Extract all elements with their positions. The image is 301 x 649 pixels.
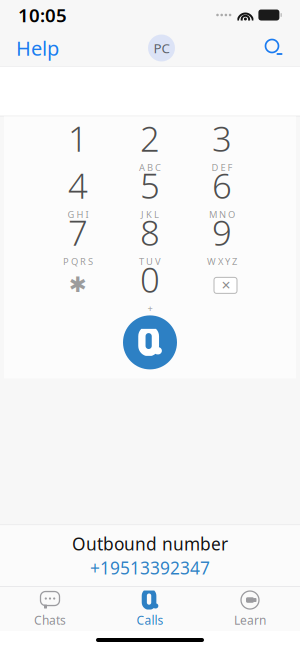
button[interactable]: 2 bbox=[114, 123, 186, 165]
button[interactable]: 7 bbox=[42, 217, 114, 259]
button[interactable]: Call bbox=[114, 311, 186, 373]
staticText: T U V bbox=[139, 255, 161, 268]
button[interactable]: Star bbox=[42, 264, 114, 306]
staticText: 9 bbox=[212, 209, 232, 255]
staticText: Calls bbox=[136, 612, 163, 628]
staticText: 8 bbox=[140, 209, 160, 255]
staticText: G H I bbox=[67, 208, 88, 221]
staticText: Help bbox=[16, 35, 59, 61]
staticText: 1 bbox=[68, 115, 88, 161]
staticText: 2 bbox=[140, 115, 160, 161]
button[interactable]: 4 bbox=[42, 170, 114, 212]
staticText: 0 bbox=[140, 256, 160, 302]
button[interactable]: 1 bbox=[42, 123, 114, 165]
staticText: + bbox=[147, 302, 152, 315]
button[interactable]: Learn bbox=[200, 585, 300, 633]
staticText: +19513392347 bbox=[90, 556, 210, 579]
staticText: A B C bbox=[139, 161, 161, 174]
button[interactable]: 9 bbox=[186, 217, 258, 259]
staticText: Learn bbox=[234, 612, 266, 628]
staticText: 3 bbox=[212, 115, 232, 161]
button[interactable]: +19513392347 bbox=[90, 556, 210, 579]
button[interactable]: Calls bbox=[100, 585, 200, 633]
staticText: D E F bbox=[211, 161, 232, 174]
button[interactable]: 6 bbox=[186, 170, 258, 212]
staticText: P Q R S bbox=[63, 255, 93, 268]
staticText: J K L bbox=[141, 208, 159, 221]
button[interactable]: Chats bbox=[0, 585, 100, 633]
button[interactable]: 3 bbox=[186, 123, 258, 165]
staticText: 5 bbox=[140, 162, 160, 208]
staticText: PC bbox=[153, 39, 169, 57]
button[interactable]: Search bbox=[246, 30, 284, 66]
button[interactable]: Help bbox=[16, 27, 77, 69]
staticText: M N O bbox=[209, 208, 235, 221]
button[interactable]: Delete bbox=[186, 264, 258, 306]
button[interactable]: 5 bbox=[114, 170, 186, 212]
staticText: 4 bbox=[68, 162, 88, 208]
staticText: Chats bbox=[34, 612, 66, 628]
staticText: ✕ bbox=[221, 279, 231, 292]
button[interactable]: Account P C bbox=[144, 31, 178, 65]
staticText: 6 bbox=[212, 162, 232, 208]
staticText: 10:05 bbox=[18, 3, 67, 27]
staticText: W X Y Z bbox=[207, 255, 237, 268]
button[interactable]: 8 bbox=[114, 217, 186, 259]
staticText: 7 bbox=[68, 209, 88, 255]
staticText: ✱ bbox=[69, 272, 87, 297]
staticText: Outbound number bbox=[72, 532, 228, 555]
button[interactable]: 0 bbox=[114, 264, 186, 306]
